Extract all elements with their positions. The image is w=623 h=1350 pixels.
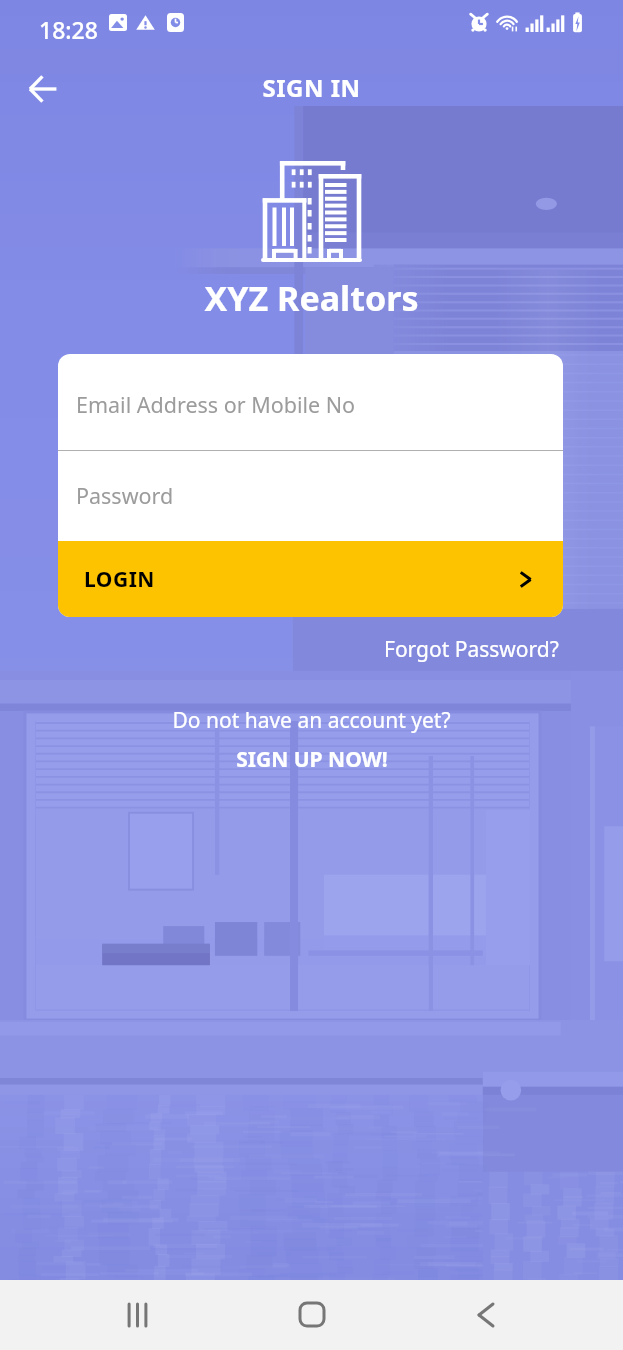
staticText: Email Address or Mobile No bbox=[76, 390, 356, 419]
button[interactable]: Email Address or Mobile No bbox=[58, 354, 563, 450]
button[interactable]: LOGIN bbox=[58, 541, 563, 617]
staticText: SIGN IN bbox=[0, 71, 623, 104]
staticText: Do not have an account yet? bbox=[0, 706, 623, 735]
button[interactable]: Back bbox=[466, 1295, 506, 1335]
button[interactable]: Home bbox=[291, 1294, 332, 1335]
button[interactable]: Back bbox=[19, 65, 67, 113]
staticText: XYZ Realtors bbox=[0, 275, 623, 321]
staticText: LOGIN bbox=[84, 565, 155, 594]
button[interactable]: Recent apps bbox=[117, 1295, 157, 1335]
staticText: Password bbox=[76, 481, 174, 510]
staticText: 18:28 bbox=[39, 14, 98, 45]
button[interactable]: Forgot Password? bbox=[382, 633, 561, 666]
button[interactable]: Password bbox=[58, 451, 563, 541]
button[interactable]: SIGN UP NOW! bbox=[232, 743, 392, 776]
